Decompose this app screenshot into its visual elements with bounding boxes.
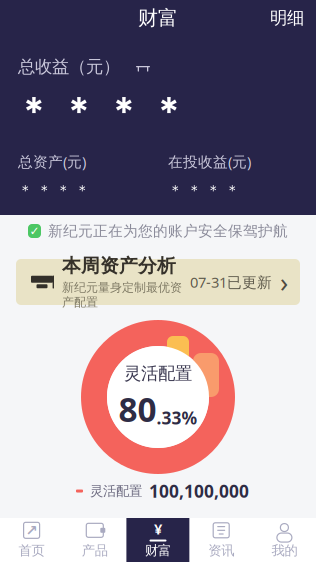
staticText: 总收益（元） [18, 56, 120, 77]
button[interactable]: 本周资产分析 [16, 259, 300, 305]
staticText: ＊ ＊ ＊ ＊ [18, 181, 90, 199]
staticText: 在投收益(元) [168, 152, 251, 171]
button[interactable]: 资讯 [190, 518, 253, 562]
staticText: 新纪元量身定制最优资产配置 [62, 280, 182, 310]
staticText: 灵活配置 [124, 363, 192, 384]
staticText: ✓ [29, 224, 39, 238]
staticText: 财富 [145, 542, 171, 559]
button[interactable]: ↗ [0, 518, 63, 562]
staticText: 80 [118, 387, 156, 431]
staticText: ↗ [26, 522, 38, 539]
staticText: 首页 [19, 542, 45, 559]
staticText: 总资产(元) [18, 152, 86, 171]
staticText: 资讯 [208, 542, 234, 559]
button[interactable]: 产品 [63, 518, 126, 562]
staticText: 产品 [82, 542, 108, 559]
staticText: 07-31已更新 [190, 272, 272, 292]
staticText: ＊ ＊ ＊ ＊ [168, 181, 240, 199]
staticText: › [280, 264, 288, 300]
staticText: ¥ [154, 519, 162, 539]
staticText: 明细 [270, 7, 304, 29]
staticText: 灵活配置 [90, 483, 142, 499]
button[interactable]: ¥ [126, 518, 190, 562]
staticText: 财富 [138, 6, 178, 30]
staticText: 100,100,000 [149, 479, 249, 502]
staticText: 新纪元正在为您的账户安全保驾护航 [48, 222, 288, 240]
staticText: 我的 [271, 542, 297, 559]
button[interactable]: 我的 [253, 518, 316, 562]
button[interactable]: 隐藏金额 [132, 59, 154, 75]
staticText: .33% [156, 406, 197, 429]
staticText: ＊ ＊ ＊ ＊ [16, 89, 186, 132]
button[interactable]: 明细 [258, 1, 316, 35]
staticText: 本周资产分析 [62, 254, 176, 277]
